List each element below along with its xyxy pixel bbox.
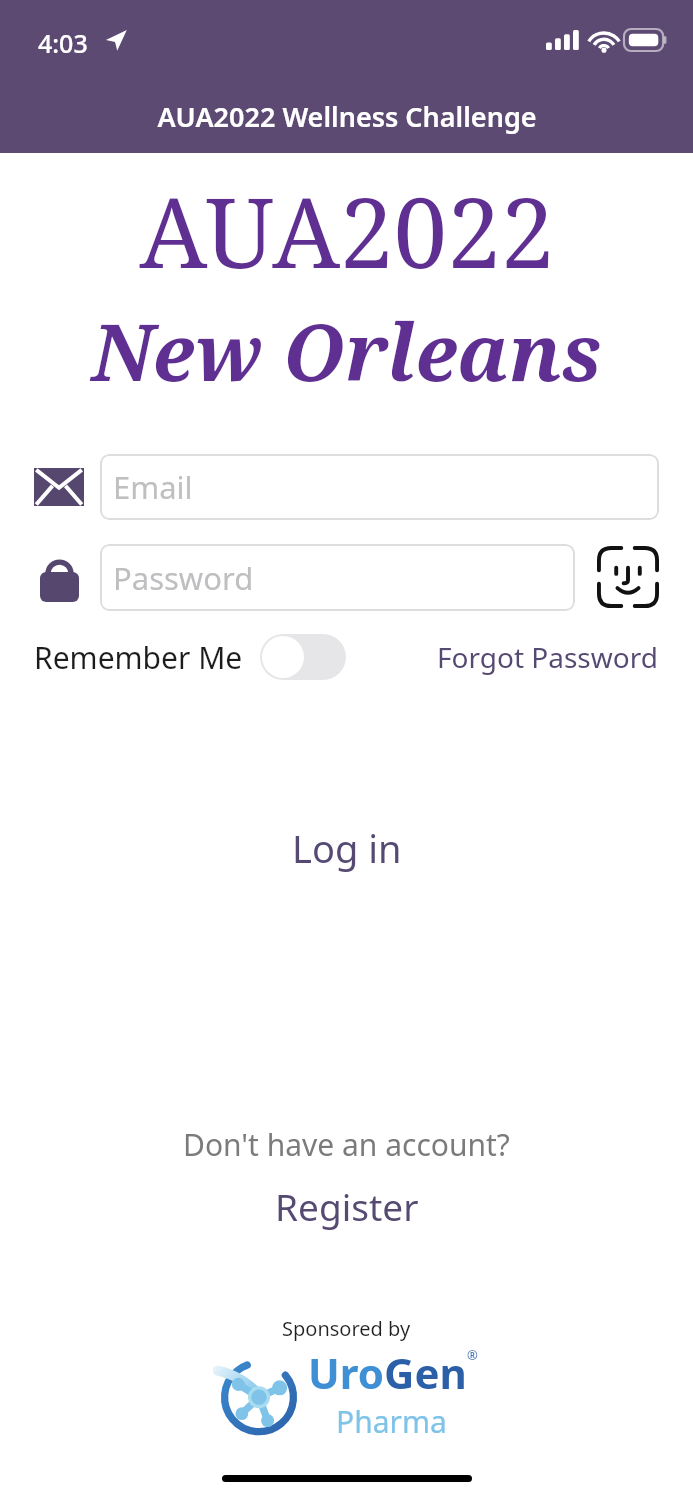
button[interactable]: Face ID login [593, 542, 663, 612]
staticText: AUA2022 Wellness Challenge [157, 98, 537, 135]
staticText: Register [275, 1181, 419, 1231]
button[interactable]: Password [100, 544, 575, 611]
staticText: Sponsored by [282, 1315, 411, 1342]
staticText: Remember Me [34, 637, 243, 678]
staticText: Email [113, 466, 193, 508]
staticText: 4:03 [38, 26, 88, 60]
staticText: Uro [308, 1344, 384, 1401]
staticText: ® [467, 1346, 478, 1364]
staticText: Gen [384, 1344, 467, 1401]
staticText: New Orleans [91, 298, 602, 404]
button[interactable]: Forgot Password [437, 638, 658, 676]
staticText: Pharma [336, 1401, 447, 1442]
staticText: Log in [292, 822, 402, 874]
button[interactable]: Remember Me [34, 634, 346, 680]
button[interactable]: Email [100, 454, 659, 520]
staticText: Password [113, 557, 254, 599]
staticText: AUA2022 [139, 165, 555, 296]
staticText: Forgot Password [437, 638, 658, 676]
button[interactable]: Log in [252, 812, 442, 884]
staticText: Don't have an account? [183, 1124, 510, 1165]
button[interactable]: Register [245, 1175, 449, 1237]
